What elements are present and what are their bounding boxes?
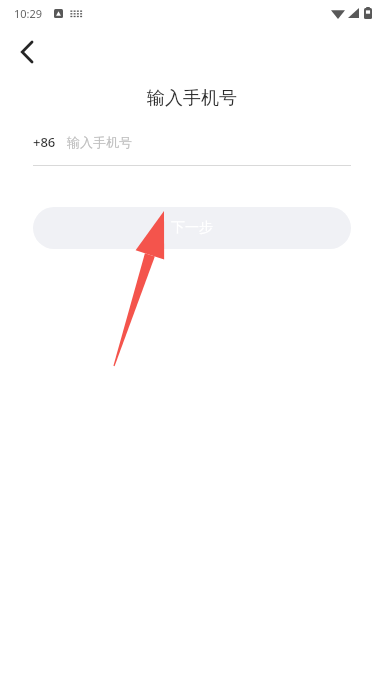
staticText: 下一步 [171, 219, 213, 237]
staticText: 输入手机号 [67, 134, 132, 150]
staticText: +86 [33, 133, 56, 151]
staticText: 10:29 [14, 6, 43, 21]
button[interactable]: +86 [33, 133, 351, 166]
button[interactable]: 下一步 [33, 207, 351, 249]
button[interactable]: Back [5, 30, 49, 74]
staticText: 输入手机号 [0, 87, 384, 110]
